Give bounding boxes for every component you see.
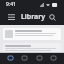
button[interactable]: Browse <box>20 55 29 62</box>
button[interactable]: Saved <box>35 55 44 62</box>
staticText: Library <box>21 12 46 22</box>
button[interactable] <box>3 28 61 40</box>
button[interactable]: You <box>49 55 58 62</box>
button[interactable]: Home <box>6 55 15 62</box>
staticText: 9:41 <box>6 1 16 8</box>
button[interactable] <box>3 43 61 52</box>
button[interactable]: Search <box>46 11 58 23</box>
button[interactable]: Navigation menu <box>5 11 17 23</box>
